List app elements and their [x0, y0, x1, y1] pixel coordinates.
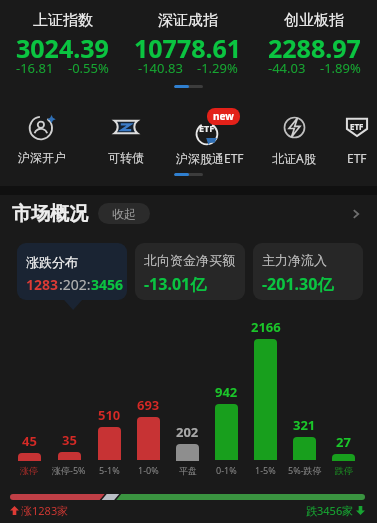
- button[interactable]: 主力净流入: [253, 243, 363, 300]
- button[interactable]: 沪深开户: [0, 93, 84, 173]
- staticText: 创业板指: [284, 11, 344, 30]
- button[interactable]: 涨跌分布: [17, 243, 127, 300]
- staticText: 可转债: [108, 150, 144, 165]
- staticText: ETF: [199, 122, 215, 134]
- staticText: 2288.97: [268, 31, 361, 65]
- staticText: 北证A股: [272, 150, 316, 166]
- staticText: 10778.61: [134, 31, 242, 65]
- staticText: 1-0%: [138, 464, 159, 476]
- staticText: 202: [176, 423, 199, 441]
- staticText: -16.81: [16, 59, 54, 74]
- staticText: 27: [336, 433, 351, 451]
- staticText: 1-5%: [255, 464, 276, 476]
- button[interactable]: 创业板指: [251, 0, 377, 80]
- staticText: 主力净流入: [262, 252, 327, 268]
- staticText: 35: [62, 431, 77, 449]
- staticText: ETF: [347, 150, 367, 166]
- staticText: 跌停: [335, 465, 353, 476]
- button[interactable]: 942: [207, 318, 246, 478]
- staticText: -13.01亿: [144, 273, 207, 295]
- button[interactable]: 可转债: [84, 93, 168, 173]
- staticText: -1.89%: [320, 59, 361, 74]
- button[interactable]: 321: [285, 318, 324, 478]
- button[interactable]: 45: [9, 318, 49, 478]
- staticText: 510: [98, 406, 121, 424]
- staticText: 3024.39: [16, 31, 109, 65]
- button[interactable]: 收起: [98, 203, 150, 224]
- button[interactable]: ETF: [168, 93, 252, 173]
- staticText: 涨停: [20, 465, 38, 476]
- staticText: 涨停-5%: [52, 464, 86, 476]
- staticText: 942: [215, 383, 238, 401]
- staticText: 涨1283家: [21, 503, 69, 518]
- staticText: :202:: [59, 275, 91, 294]
- staticText: new: [213, 109, 234, 123]
- staticText: 北向资金净买额: [144, 252, 235, 268]
- staticText: 693: [137, 396, 160, 414]
- staticText: ETF: [350, 121, 364, 132]
- button[interactable]: 693: [129, 318, 168, 478]
- staticText: 跌3456家: [306, 503, 354, 518]
- button[interactable]: 2166: [246, 318, 285, 478]
- button[interactable]: 北证A股: [252, 93, 336, 173]
- staticText: -1.29%: [197, 59, 238, 74]
- staticText: 2166: [251, 318, 281, 336]
- staticText: 收起: [112, 206, 136, 221]
- button[interactable]: 北向资金净买额: [135, 243, 245, 300]
- staticText: 45: [22, 432, 37, 450]
- button[interactable]: More: [345, 203, 367, 225]
- staticText: 沪深股通ETF: [176, 150, 244, 166]
- staticText: 深证成指: [158, 11, 218, 30]
- button[interactable]: 市场概况: [0, 195, 377, 232]
- button[interactable]: 27: [324, 318, 363, 478]
- button[interactable]: 510: [89, 318, 129, 478]
- staticText: 5%-跌停: [288, 464, 322, 476]
- button[interactable]: ETF: [336, 93, 377, 173]
- staticText: 1283: [26, 275, 59, 294]
- staticText: -0.55%: [68, 59, 109, 74]
- staticText: 平盘: [179, 465, 197, 476]
- staticText: 沪深开户: [18, 150, 66, 165]
- staticText: 0-1%: [216, 464, 237, 476]
- staticText: 涨跌分布: [26, 254, 78, 270]
- staticText: -140.83: [138, 59, 183, 74]
- staticText: 上证指数: [33, 11, 93, 30]
- staticText: 5-1%: [99, 464, 120, 476]
- button[interactable]: 202: [168, 318, 207, 478]
- button[interactable]: 深证成指: [125, 0, 251, 80]
- staticText: 市场概况: [12, 202, 88, 226]
- button[interactable]: 35: [49, 318, 89, 478]
- staticText: 3456: [91, 275, 124, 294]
- button[interactable]: 上证指数: [0, 0, 125, 80]
- staticText: 321: [293, 416, 316, 434]
- staticText: -44.03: [268, 59, 306, 74]
- staticText: -201.30亿: [262, 273, 334, 295]
